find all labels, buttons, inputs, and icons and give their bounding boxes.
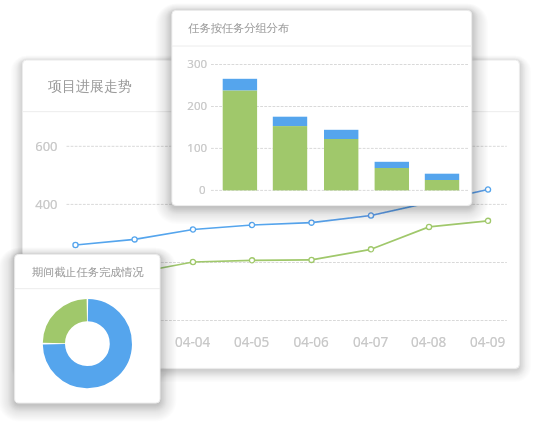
button[interactable]: Project dashboard charts xyxy=(0,0,533,428)
